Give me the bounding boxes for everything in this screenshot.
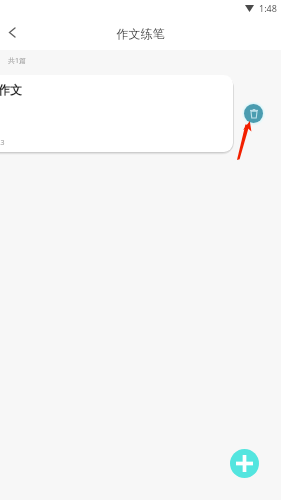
button[interactable]: Add [230,449,259,478]
button[interactable]: Delete [244,104,263,123]
staticText: 共1篇 [8,56,27,66]
staticText: 1:48 [259,2,277,14]
staticText: 作文练笔 [0,26,281,50]
staticText: 我的作文 [0,82,22,97]
button[interactable]: 我的作文 [0,75,233,152]
staticText: 2023-05-23 [0,138,5,148]
button[interactable]: Back [0,16,24,48]
